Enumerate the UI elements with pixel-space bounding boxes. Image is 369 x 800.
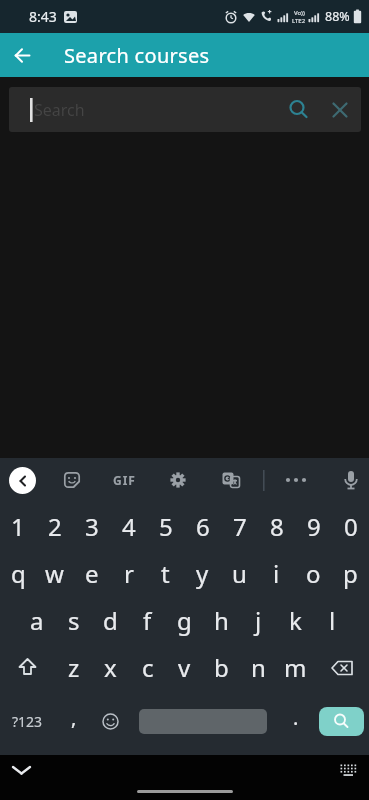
staticText: b	[214, 651, 229, 684]
button[interactable]	[9, 467, 36, 494]
staticText: y	[196, 557, 209, 590]
staticText: GIF	[113, 472, 136, 488]
button[interactable]: f	[129, 597, 166, 644]
button[interactable]: a	[18, 597, 55, 644]
button[interactable]: j	[240, 597, 277, 644]
staticText: p	[343, 557, 358, 590]
button[interactable]: x	[92, 644, 129, 691]
button[interactable]	[339, 468, 363, 492]
button[interactable]: GIF	[106, 468, 142, 492]
button[interactable]	[92, 698, 129, 745]
button[interactable]: o	[295, 550, 332, 597]
button[interactable]: ,	[55, 698, 92, 745]
staticText: 8:43	[29, 7, 57, 26]
staticText: u	[232, 557, 247, 590]
button[interactable]: h	[203, 597, 240, 644]
staticText: 0	[344, 510, 358, 543]
button[interactable]: ?123	[0, 698, 55, 745]
staticText: LTE2	[292, 17, 306, 25]
staticText: 88%	[325, 8, 350, 25]
button[interactable]: p	[332, 550, 369, 597]
button[interactable]: r	[110, 550, 147, 597]
button[interactable]: d	[92, 597, 129, 644]
button[interactable]: s	[55, 597, 92, 644]
staticText: Search	[34, 99, 85, 121]
staticText: j	[255, 604, 262, 637]
button[interactable]	[4, 755, 38, 785]
button[interactable]: v	[166, 644, 203, 691]
button[interactable]: m	[277, 644, 314, 691]
staticText: s	[68, 604, 80, 637]
button[interactable]	[166, 468, 190, 492]
button[interactable]: u	[221, 550, 258, 597]
button[interactable]: 7	[221, 503, 258, 550]
button[interactable]: k	[277, 597, 314, 644]
staticText: v	[178, 651, 191, 684]
button[interactable]: i	[258, 550, 295, 597]
staticText: ?123	[12, 712, 43, 731]
button[interactable]	[129, 698, 277, 745]
button[interactable]: q	[0, 550, 36, 597]
button[interactable]: 8	[258, 503, 295, 550]
staticText: Search courses	[64, 42, 210, 69]
button[interactable]: 0	[332, 503, 369, 550]
staticText: .	[293, 704, 299, 731]
button[interactable]	[0, 33, 44, 77]
button[interactable]: e	[73, 550, 110, 597]
button[interactable]: 6	[184, 503, 221, 550]
button[interactable]: n	[240, 644, 277, 691]
staticText: 2	[48, 510, 62, 543]
staticText: n	[251, 651, 266, 684]
staticText: 1	[11, 510, 25, 543]
button[interactable]: b	[203, 644, 240, 691]
button[interactable]	[314, 644, 369, 691]
button[interactable]: l	[314, 597, 351, 644]
staticText: x	[104, 651, 117, 684]
staticText: w	[45, 557, 64, 590]
staticText: g	[177, 604, 192, 637]
button[interactable]	[282, 93, 316, 127]
button[interactable]: 9	[295, 503, 332, 550]
button[interactable]	[0, 644, 55, 691]
button[interactable]	[332, 755, 364, 785]
button[interactable]	[283, 468, 309, 492]
staticText: t	[161, 557, 170, 590]
button[interactable]: y	[184, 550, 221, 597]
staticText: d	[103, 604, 118, 637]
button[interactable]	[60, 468, 84, 492]
button[interactable]: t	[147, 550, 184, 597]
button[interactable]: w	[36, 550, 73, 597]
staticText: 4	[122, 510, 136, 543]
staticText: c	[142, 651, 154, 684]
staticText: l	[329, 604, 336, 637]
button[interactable]: 5	[147, 503, 184, 550]
staticText: o	[306, 557, 321, 590]
staticText: h	[214, 604, 229, 637]
button[interactable]: c	[129, 644, 166, 691]
button[interactable]	[325, 95, 355, 125]
button[interactable]: g	[166, 597, 203, 644]
staticText: Vo))	[294, 9, 305, 17]
staticText: 6	[196, 510, 210, 543]
button[interactable]: 4	[110, 503, 147, 550]
button[interactable]: 2	[36, 503, 73, 550]
button[interactable]	[219, 468, 243, 492]
button[interactable]: Search	[9, 87, 361, 132]
staticText: e	[85, 557, 99, 590]
staticText: 7	[233, 510, 247, 543]
staticText: m	[284, 651, 307, 684]
button[interactable]: z	[55, 644, 92, 691]
staticText: 3	[85, 510, 99, 543]
staticText: k	[289, 604, 302, 637]
staticText: ,	[71, 704, 77, 731]
staticText: i	[273, 557, 280, 590]
staticText: 5	[159, 510, 173, 543]
staticText: r	[124, 557, 134, 590]
button[interactable]: .	[277, 698, 314, 745]
staticText: 9	[307, 510, 321, 543]
staticText: f	[143, 604, 152, 637]
button[interactable]	[314, 698, 369, 745]
button[interactable]: 1	[0, 503, 36, 550]
staticText: a	[30, 604, 44, 637]
button[interactable]: 3	[73, 503, 110, 550]
